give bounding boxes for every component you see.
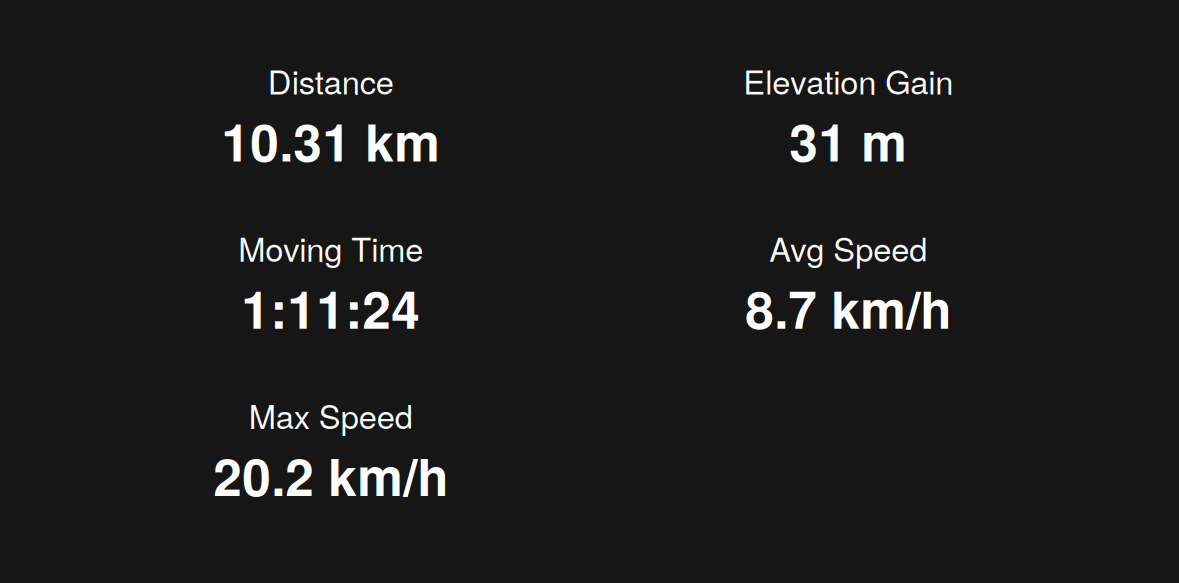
staticText: Elevation Gain	[743, 57, 953, 104]
staticText: Moving Time	[238, 224, 423, 271]
staticText: 8.7 km/h	[745, 271, 951, 345]
staticText: 31 m	[789, 104, 907, 177]
staticText: Max Speed	[249, 392, 413, 438]
staticText: 10.31 km	[221, 104, 440, 177]
staticText: Distance	[268, 57, 394, 104]
staticText: 20.2 km/h	[213, 438, 448, 512]
staticText: Avg Speed	[769, 224, 927, 271]
staticText: 1:11:24	[241, 271, 420, 345]
